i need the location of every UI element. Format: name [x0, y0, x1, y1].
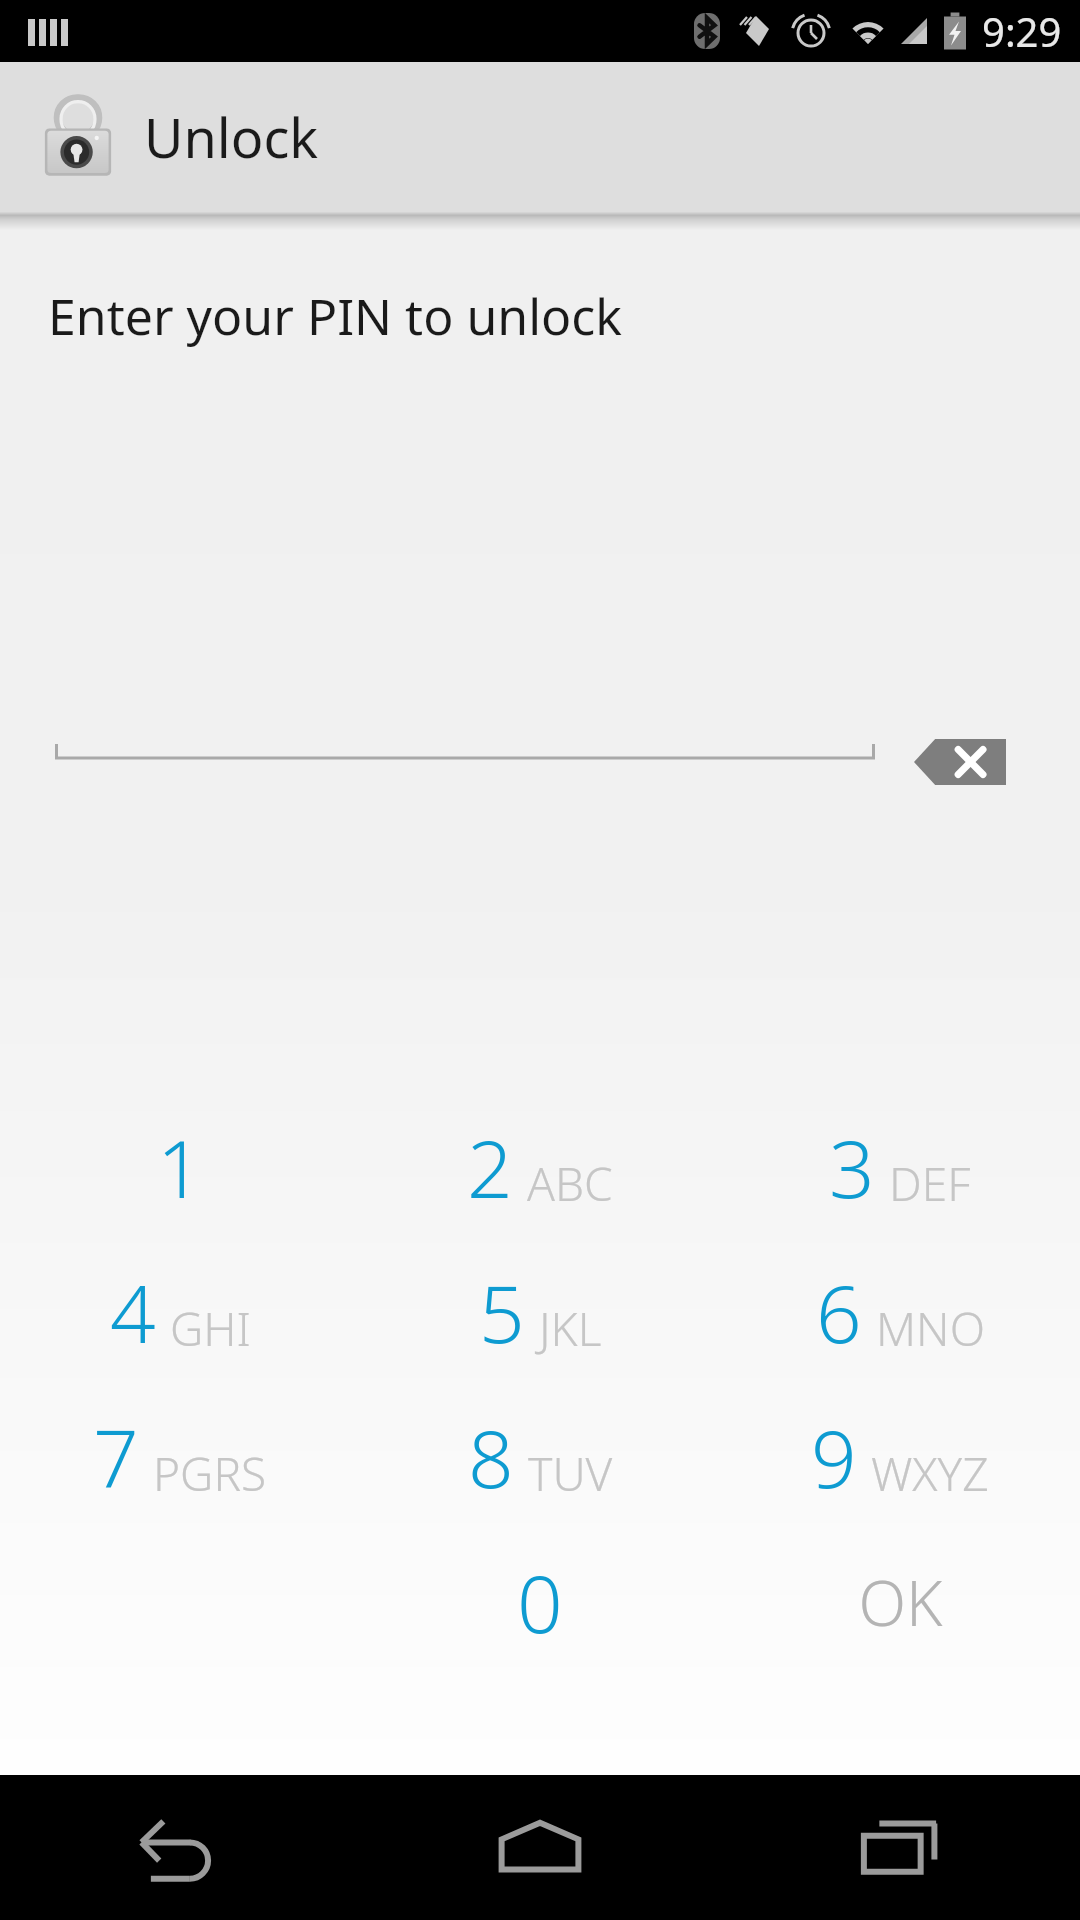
staticText: OK — [858, 1560, 943, 1644]
button[interactable]: Back — [0, 1775, 360, 1920]
button[interactable]: Home — [360, 1775, 720, 1920]
staticText: Enter your PIN to unlock — [48, 282, 623, 350]
staticText: PGRS — [153, 1442, 267, 1505]
button[interactable]: OK — [720, 1533, 1080, 1678]
button[interactable]: 8 — [360, 1388, 720, 1533]
staticText: 5 — [479, 1257, 525, 1366]
staticText: JKL — [539, 1297, 602, 1360]
button[interactable]: Recent apps — [720, 1775, 1080, 1920]
staticText: 4 — [110, 1257, 156, 1366]
button[interactable]: 5 — [360, 1243, 720, 1388]
staticText: ABC — [527, 1152, 613, 1215]
staticText: WXYZ — [871, 1442, 989, 1505]
button[interactable]: 2 — [360, 1098, 720, 1243]
staticText: 3 — [829, 1112, 875, 1221]
staticText: 0 — [517, 1547, 563, 1656]
button[interactable]: 9 — [720, 1388, 1080, 1533]
staticText: 6 — [816, 1257, 862, 1366]
staticText: 7 — [93, 1402, 139, 1511]
button[interactable]: 1 — [0, 1098, 360, 1243]
button[interactable]: 4 — [0, 1243, 360, 1388]
button[interactable]: 0 — [360, 1533, 720, 1678]
staticText: GHI — [170, 1297, 251, 1360]
staticText: MNO — [876, 1297, 985, 1360]
staticText: 9:29 — [982, 4, 1062, 58]
button[interactable]: 7 — [0, 1388, 360, 1533]
staticText: 9 — [811, 1402, 857, 1511]
staticText: DEF — [889, 1152, 971, 1215]
button[interactable] — [55, 654, 875, 764]
staticText: 8 — [468, 1402, 514, 1511]
button[interactable]: Delete — [905, 730, 1015, 794]
staticText: TUV — [528, 1442, 613, 1505]
button[interactable]: 3 — [720, 1098, 1080, 1243]
button[interactable]: 6 — [720, 1243, 1080, 1388]
staticText: 1 — [157, 1112, 203, 1221]
staticText: Unlock — [144, 100, 319, 174]
staticText: 2 — [467, 1112, 513, 1221]
